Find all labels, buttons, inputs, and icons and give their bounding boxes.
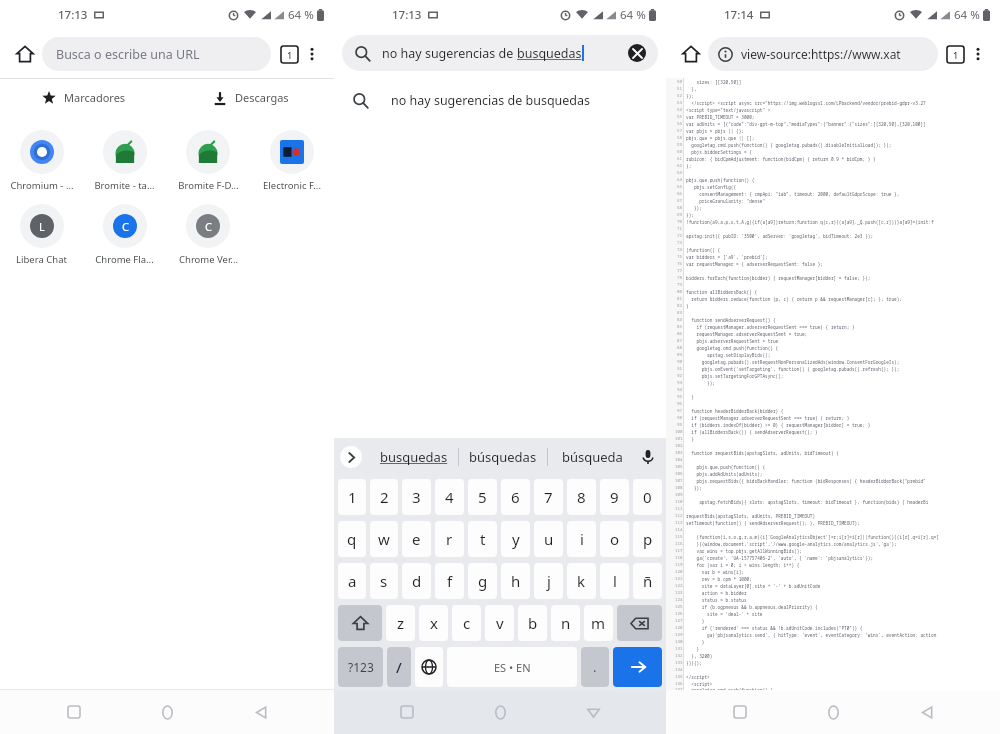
button[interactable]: Busca o escribe una URL [42, 37, 271, 71]
button[interactable]: w [370, 521, 398, 557]
button[interactable]: Language [415, 647, 443, 687]
button[interactable]: búsqueda [548, 448, 636, 466]
button[interactable]: s [370, 563, 398, 599]
button[interactable]: e [402, 521, 431, 557]
button[interactable]: Back [241, 692, 281, 732]
button[interactable]: C [166, 198, 250, 272]
button[interactable]: Tabs [281, 46, 298, 63]
button[interactable]: Space [447, 647, 577, 687]
button[interactable]: no hay sugerencias de busquedas [334, 76, 666, 124]
staticText: t [480, 529, 486, 549]
button[interactable]: 2 [370, 479, 398, 515]
staticText: 81 [677, 296, 683, 302]
button[interactable]: c [452, 605, 481, 641]
button[interactable]: x [419, 605, 448, 641]
button[interactable]: 5 [468, 479, 497, 515]
button[interactable]: Slash [387, 647, 411, 687]
button[interactable]: Recents [54, 692, 94, 732]
button[interactable]: Marcadores [0, 79, 167, 116]
staticText: e [412, 529, 421, 549]
staticText: 98 [677, 415, 683, 421]
button[interactable]: Period [581, 647, 609, 687]
button[interactable]: 6 [501, 479, 530, 515]
button[interactable]: 4 [435, 479, 464, 515]
staticText: C [205, 219, 212, 234]
staticText: }); [686, 93, 694, 99]
button[interactable]: r [435, 521, 464, 557]
button[interactable]: More options [298, 40, 326, 68]
staticText: </script> <script async src="https://img… [686, 100, 926, 106]
button[interactable]: y [501, 521, 530, 557]
button[interactable]: C [83, 198, 166, 272]
staticText: !function(a9,a,p,s,t,A,g){if(a[a9])retur… [686, 219, 934, 225]
button[interactable]: n [551, 605, 580, 641]
staticText: 3 [412, 487, 421, 507]
button[interactable]: Shift [338, 605, 382, 641]
button[interactable]: Home [674, 37, 708, 71]
button[interactable]: l [600, 563, 629, 599]
button[interactable]: Backspace [617, 605, 662, 641]
button[interactable]: view-source:https://www.xat [708, 37, 938, 71]
button[interactable]: More options [964, 40, 992, 68]
button[interactable]: More suggestions [340, 446, 362, 468]
button[interactable]: Back [573, 692, 613, 732]
button[interactable]: i [567, 521, 596, 557]
button[interactable]: 3 [402, 479, 431, 515]
button[interactable]: L [0, 198, 83, 272]
staticText: 82 [677, 303, 683, 309]
button[interactable]: p [633, 521, 662, 557]
button[interactable]: z [386, 605, 415, 641]
staticText: 97 [677, 408, 683, 414]
button[interactable]: Symbols [338, 647, 383, 687]
button[interactable]: Home [147, 692, 187, 732]
button[interactable]: b [518, 605, 547, 641]
staticText: 103 [675, 450, 683, 456]
staticText: } [686, 303, 689, 309]
button[interactable]: Bromite F-D... [166, 124, 250, 198]
button[interactable]: Clear [628, 44, 646, 62]
staticText: ñ [643, 571, 653, 591]
button[interactable]: o [600, 521, 629, 557]
button[interactable]: Recents [387, 692, 427, 732]
staticText: b [528, 613, 538, 633]
button[interactable]: Home [813, 692, 853, 732]
button[interactable]: 0 [633, 479, 662, 515]
button[interactable]: g [468, 563, 497, 599]
button[interactable]: u [534, 521, 563, 557]
button[interactable]: f [435, 563, 464, 599]
button[interactable]: Home [8, 37, 42, 71]
button[interactable]: Electronic F... [250, 124, 334, 198]
button[interactable]: Tabs [947, 46, 964, 63]
button[interactable]: 8 [567, 479, 596, 515]
button[interactable]: Back [907, 692, 947, 732]
button[interactable]: m [584, 605, 613, 641]
button[interactable]: no hay sugerencias de [342, 35, 658, 71]
button[interactable]: Go [613, 647, 662, 687]
button[interactable]: t [468, 521, 497, 557]
button[interactable]: Recents [720, 692, 760, 732]
button[interactable]: Voice input [636, 445, 660, 469]
button[interactable]: k [567, 563, 596, 599]
button[interactable]: q [338, 521, 366, 557]
button[interactable]: Home [480, 692, 520, 732]
button[interactable]: busquedas [370, 448, 458, 466]
staticText: 109 [675, 492, 683, 498]
button[interactable]: Chromium - ... [0, 124, 83, 198]
button[interactable]: Bromite - ta... [83, 124, 166, 198]
button[interactable]: h [501, 563, 530, 599]
staticText: 131 [675, 646, 683, 652]
button[interactable]: 1 [338, 479, 366, 515]
button[interactable]: a [338, 563, 366, 599]
button[interactable]: 7 [534, 479, 563, 515]
staticText: 64 % [288, 7, 314, 23]
button[interactable]: búsquedas [459, 448, 547, 466]
button[interactable]: d [402, 563, 431, 599]
button[interactable]: Descargas [167, 79, 334, 116]
staticText: 110 [675, 499, 683, 505]
button[interactable]: ñ [633, 563, 662, 599]
button[interactable]: j [534, 563, 563, 599]
staticText: 67 [677, 198, 683, 204]
staticText: function allBiddersBack() { [686, 289, 758, 295]
button[interactable]: 9 [600, 479, 629, 515]
button[interactable]: v [485, 605, 514, 641]
